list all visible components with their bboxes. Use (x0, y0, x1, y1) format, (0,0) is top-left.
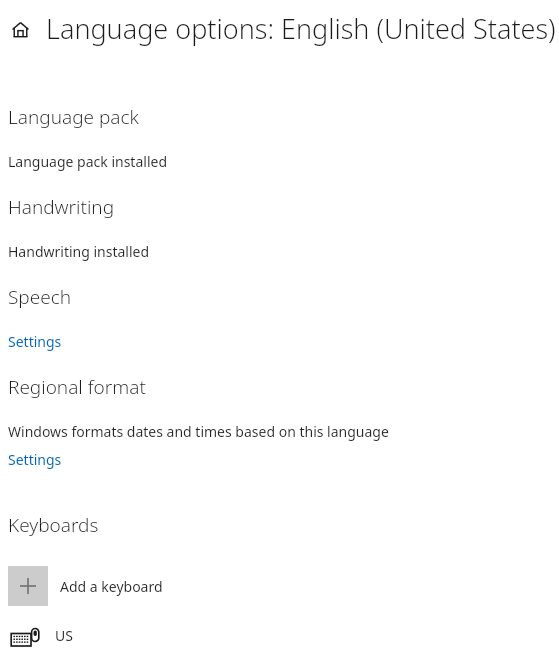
staticText: Windows formats dates and times based on… (8, 422, 389, 441)
button[interactable]: Settings (8, 331, 62, 352)
button[interactable]: Home (6, 15, 34, 43)
button[interactable]: US (0, 626, 559, 651)
staticText: Regional format (8, 374, 146, 400)
staticText: Language options: English (United States… (46, 10, 556, 47)
staticText: Add a keyboard (60, 577, 163, 596)
staticText: US (55, 626, 73, 645)
staticText: Handwriting installed (8, 242, 150, 261)
staticText: Settings (8, 332, 62, 351)
button[interactable]: Settings (8, 449, 62, 470)
staticText: Speech (8, 284, 72, 310)
button[interactable]: Add a keyboard (0, 566, 559, 606)
staticText: Settings (8, 450, 62, 469)
staticText: Language pack installed (8, 152, 168, 171)
staticText: Keyboards (8, 512, 99, 538)
staticText: Language pack (8, 104, 139, 130)
staticText: Handwriting (8, 194, 115, 220)
